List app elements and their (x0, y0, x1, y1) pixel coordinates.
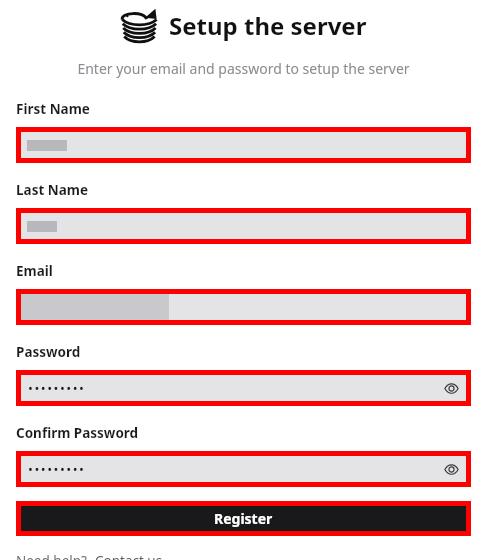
staticText: First Name (16, 100, 90, 118)
button[interactable] (21, 294, 466, 320)
staticText: ••••••••• (28, 379, 86, 397)
staticText: Confirm Password (16, 424, 139, 442)
button[interactable] (21, 132, 466, 158)
button[interactable]: ••••••••• (21, 456, 466, 482)
staticText: Password (16, 343, 81, 361)
staticText: Enter your email and password to setup t… (0, 59, 487, 78)
staticText: Setup the server (169, 9, 367, 42)
staticText: Register (214, 509, 273, 528)
staticText: Contact us (95, 552, 163, 560)
button[interactable]: ••••••••• (21, 375, 466, 401)
staticText: Need help? (16, 552, 87, 560)
button[interactable] (21, 213, 466, 239)
button[interactable]: Contact us (95, 552, 163, 560)
button[interactable]: Show confirm password (444, 462, 459, 477)
staticText: ••••••••• (28, 460, 86, 478)
button[interactable]: Register (21, 506, 466, 531)
staticText: Email (16, 262, 53, 280)
staticText: Last Name (16, 181, 89, 199)
button[interactable]: Show password (444, 381, 459, 396)
